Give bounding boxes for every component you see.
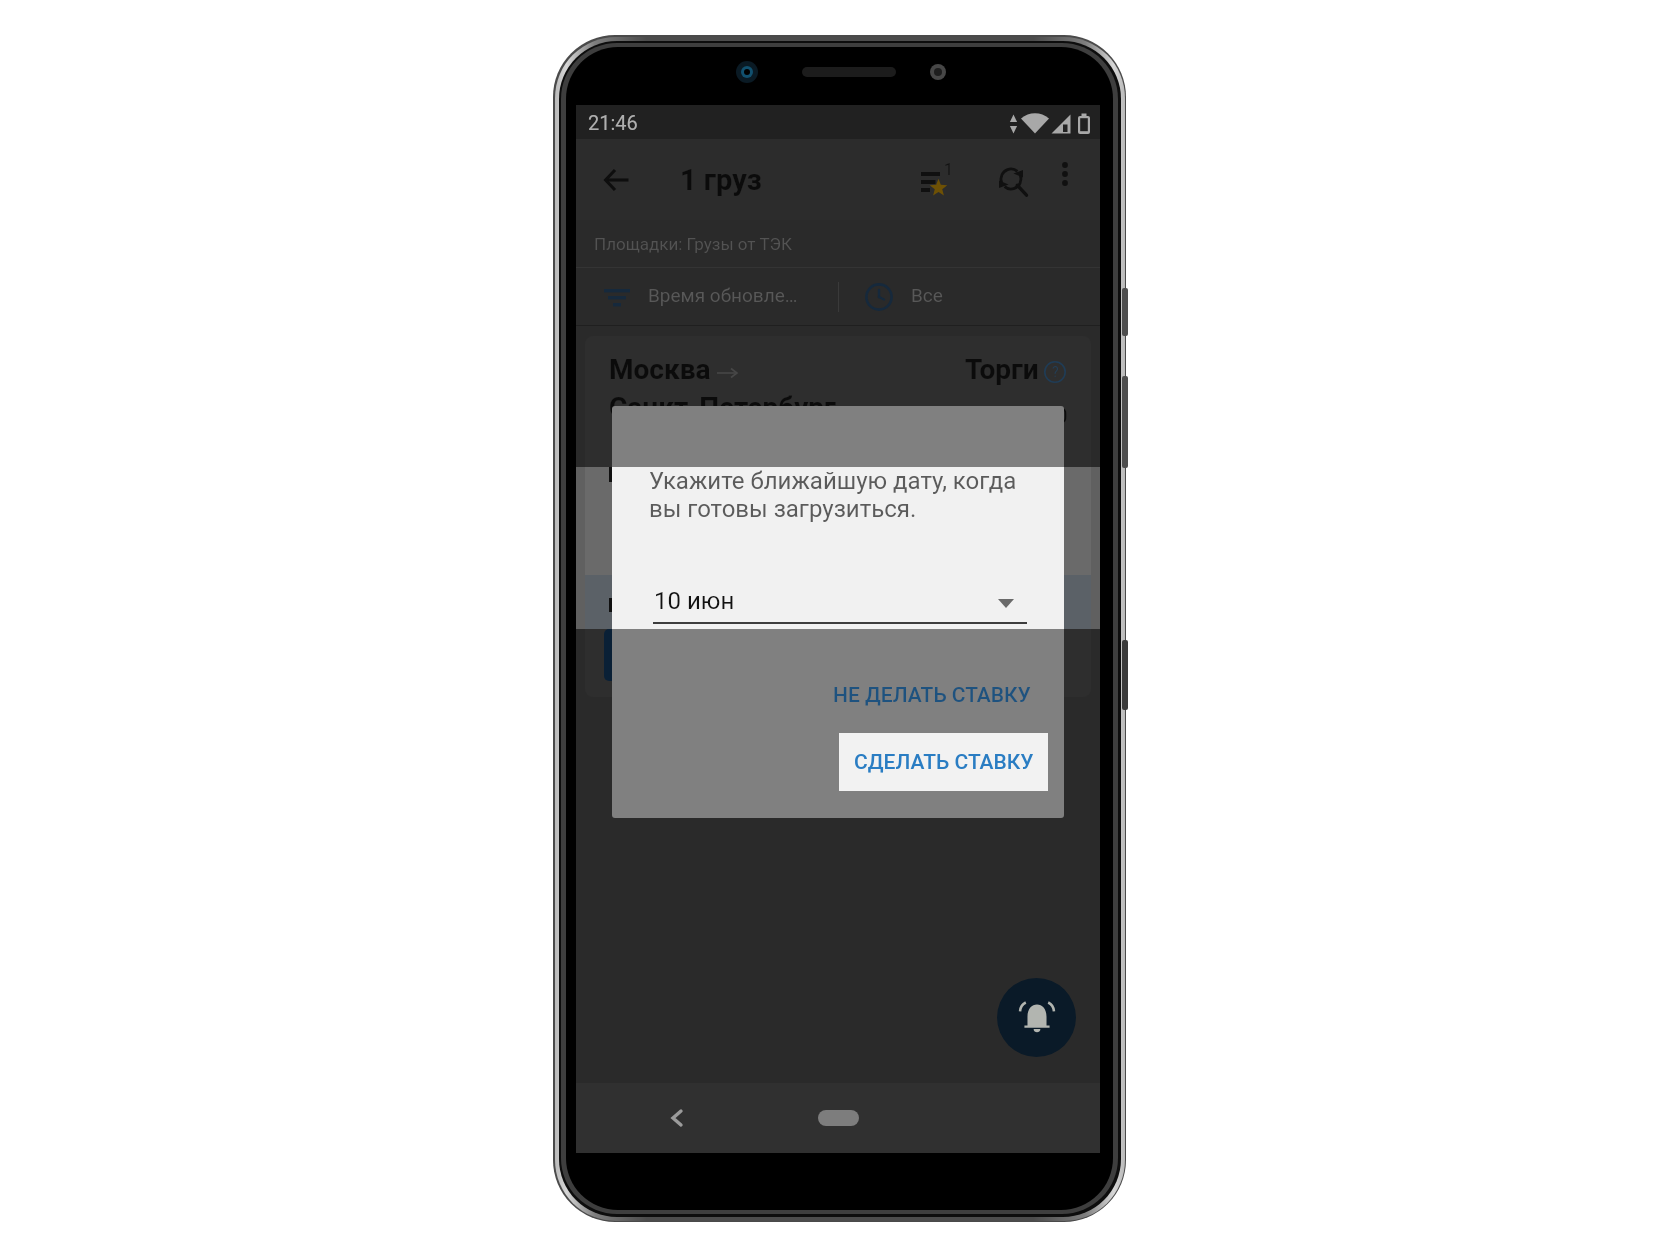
button[interactable]: Москва [585,336,1091,697]
button[interactable]: Help [1044,361,1066,383]
staticText: 6 [973,404,985,429]
staticText: 1 груз [680,163,762,197]
staticText: Укажите ближайшую дату, когда вы готовы … [649,467,1017,523]
staticText: 22,0 [1028,404,1068,429]
button[interactable]: Back [590,153,644,207]
button[interactable]: Back [653,1094,701,1142]
staticText: НЕ ДЕЛАТЬ СТАВКУ [833,683,1031,708]
staticText: ? [1052,364,1059,380]
button[interactable]: Refresh search [977,145,1051,219]
button[interactable] [604,629,848,681]
staticText: СДЕЛАТЬ СТАВКУ [854,750,1034,775]
button[interactable]: НЕ ДЕЛАТЬ СТАВКУ [824,670,1040,720]
staticText: 40 [910,404,934,429]
button[interactable]: СДЕЛАТЬ СТАВКУ [839,733,1048,791]
staticText: 21:46 [588,111,638,134]
staticText: 10 июн [654,587,735,615]
staticText: Москва [609,353,711,386]
button[interactable]: Notifications [997,978,1076,1057]
button[interactable]: More options [1036,145,1094,203]
button[interactable]: Favourite loads filter [899,145,975,221]
staticText: Торги [965,353,1039,386]
staticText: Все [911,284,943,306]
staticText: 1 [944,160,953,179]
button[interactable]: Время обновле… [576,268,838,326]
staticText: Санкт-Петербург [609,391,836,424]
staticText: 715 [828,404,864,429]
staticText: Время обновле… [648,284,798,306]
button[interactable]: Home [802,1101,874,1135]
button[interactable]: Все [839,268,1100,326]
staticText: Площадки: Грузы от ТЭК [594,234,792,254]
